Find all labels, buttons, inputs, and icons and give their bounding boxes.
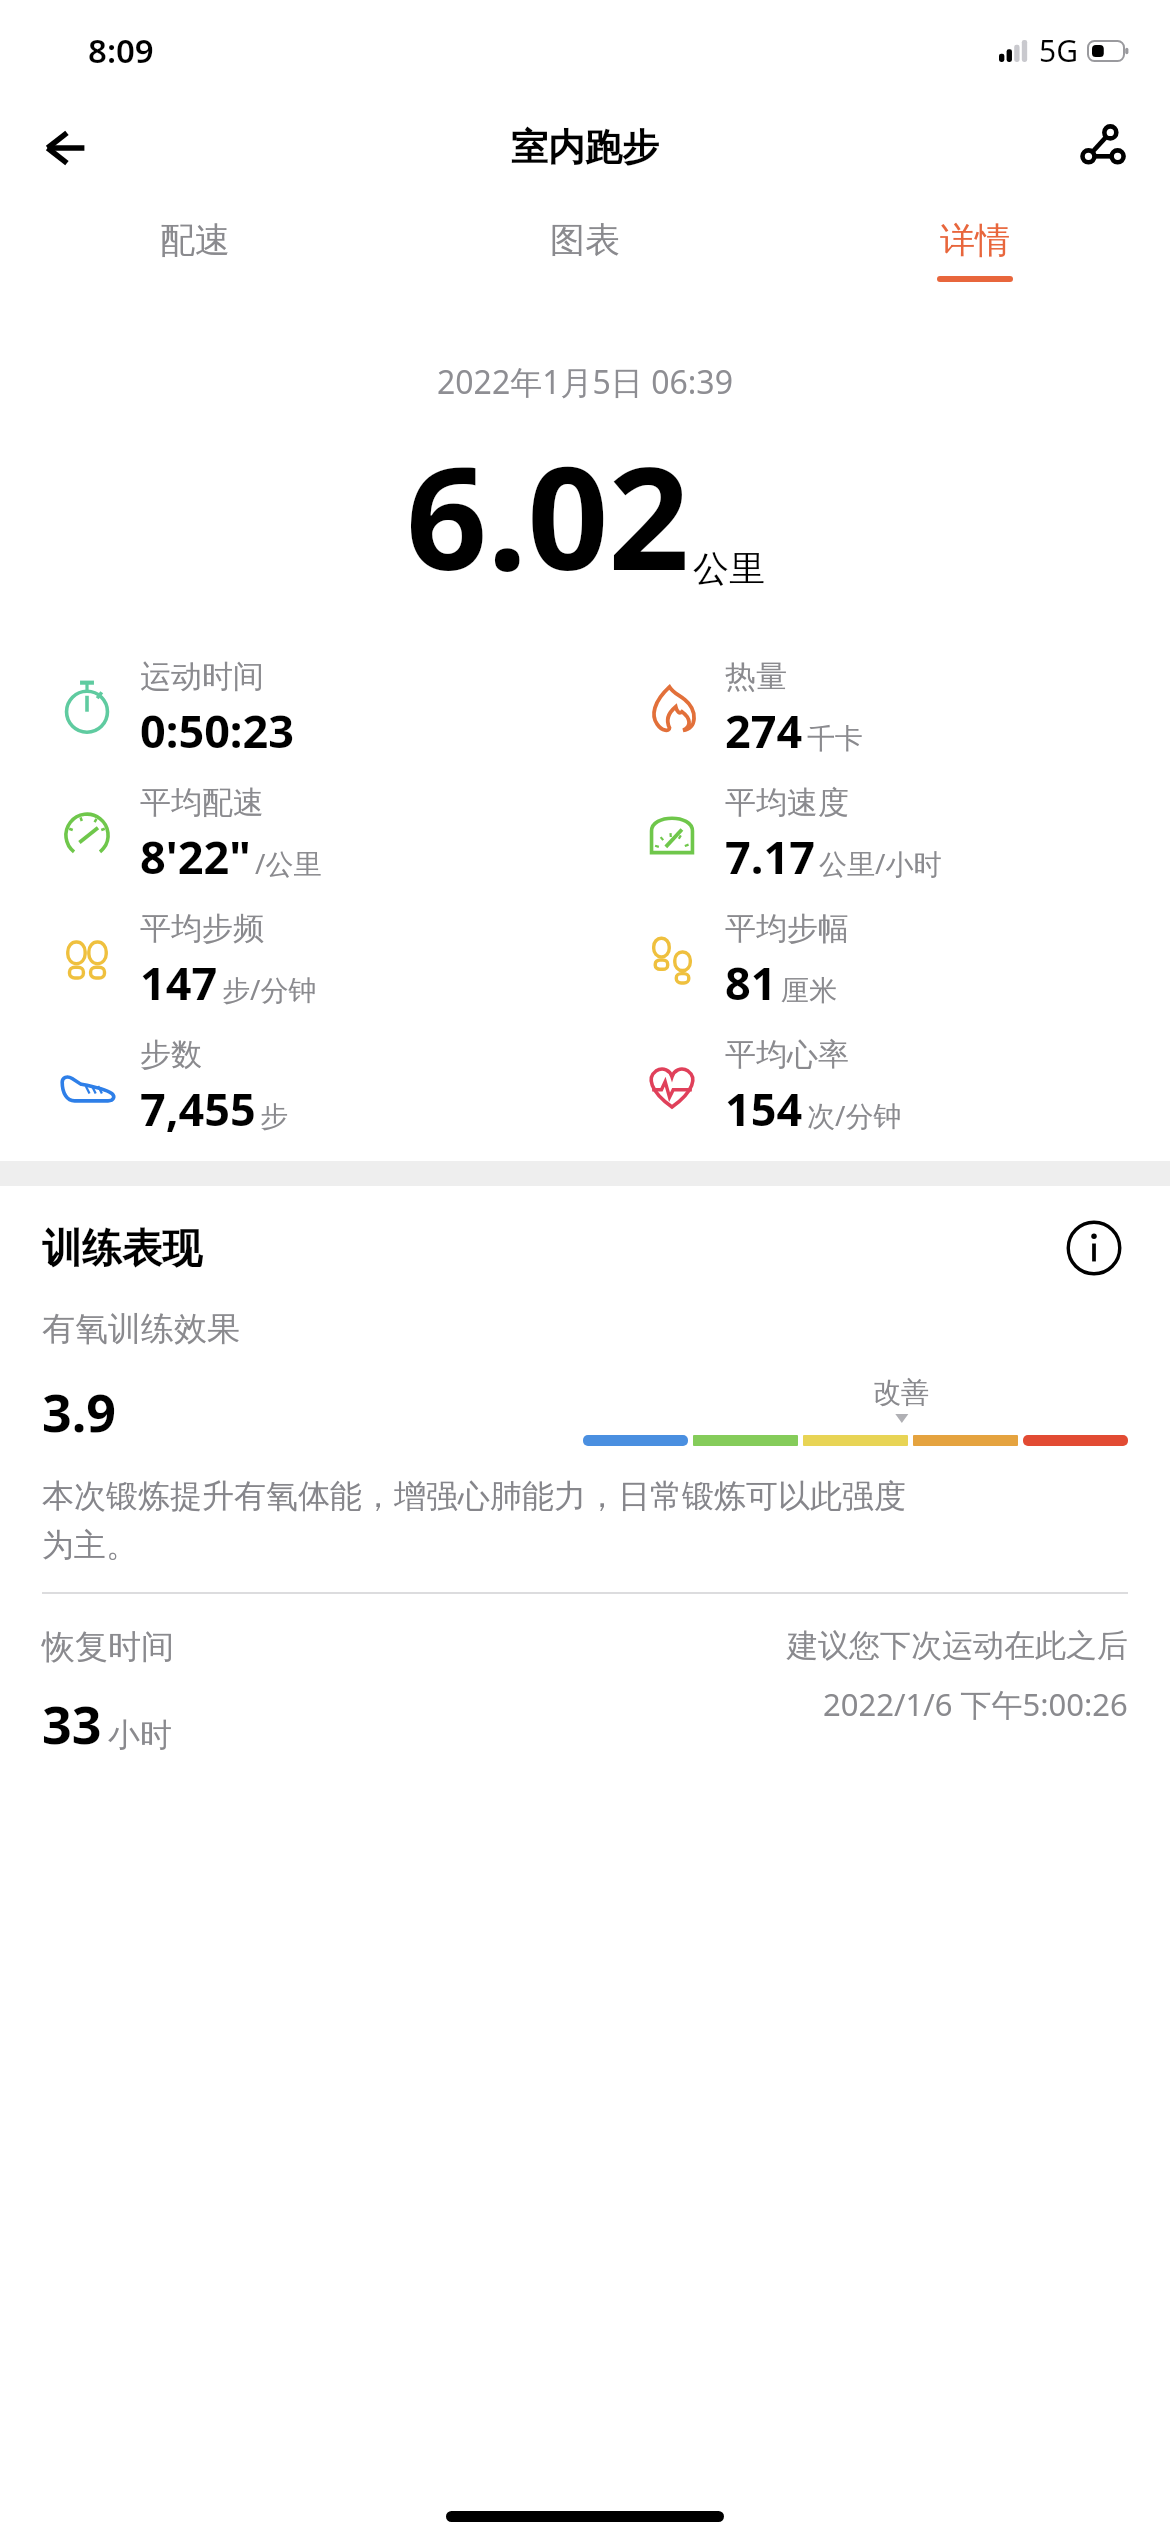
- staticText: 33: [42, 1688, 102, 1759]
- staticText: 公里: [693, 546, 765, 591]
- staticText: 平均心率: [725, 1035, 849, 1074]
- staticText: 7.17: [725, 826, 815, 885]
- staticText: 步: [260, 1099, 288, 1134]
- staticText: 改善: [873, 1375, 929, 1410]
- staticText: 小时: [108, 1715, 172, 1755]
- button[interactable]: 配速: [0, 200, 390, 276]
- staticText: 81: [725, 952, 777, 1011]
- staticText: 千卡: [807, 721, 863, 756]
- staticText: 147: [140, 952, 218, 1011]
- staticText: 次/分钟: [807, 1096, 902, 1134]
- staticText: 2022/1/6 下午5:00:26: [823, 1683, 1128, 1725]
- staticText: 建议您下次运动在此之后: [787, 1626, 1128, 1665]
- staticText: 室内跑步: [511, 124, 659, 171]
- button[interactable]: Share: [1060, 106, 1144, 190]
- staticText: 步/分钟: [222, 970, 317, 1008]
- button[interactable]: 平均步频: [0, 909, 585, 1011]
- staticText: 运动时间: [140, 657, 264, 696]
- staticText: 恢复时间: [42, 1626, 174, 1668]
- staticText: 公里/小时: [819, 844, 942, 882]
- staticText: 0:50:23: [140, 700, 294, 759]
- staticText: 3.9: [42, 1376, 117, 1447]
- staticText: 步数: [140, 1035, 202, 1074]
- staticText: 8:09: [88, 28, 154, 73]
- staticText: 厘米: [781, 973, 837, 1008]
- staticText: 配速: [160, 218, 230, 262]
- staticText: 详情: [940, 218, 1010, 262]
- staticText: 5G: [1039, 30, 1078, 71]
- button[interactable]: 步数: [0, 1035, 585, 1137]
- button[interactable]: 平均速度: [585, 783, 1170, 885]
- staticText: 平均速度: [725, 783, 849, 822]
- staticText: 274: [725, 700, 803, 759]
- staticText: 本次锻炼提升有氧体能，增强心肺能力，日常锻炼可以此强度 为主。: [42, 1476, 906, 1566]
- staticText: 训练表现: [42, 1223, 202, 1273]
- button[interactable]: 运动时间: [0, 657, 585, 759]
- staticText: 平均配速: [140, 783, 264, 822]
- staticText: 平均步频: [140, 909, 264, 948]
- staticText: 2022年1月5日 06:39: [437, 360, 733, 404]
- staticText: 8'22": [140, 826, 251, 885]
- staticText: 有氧训练效果: [42, 1308, 240, 1350]
- staticText: 154: [725, 1078, 803, 1137]
- button[interactable]: 图表: [390, 200, 780, 276]
- button[interactable]: 平均心率: [585, 1035, 1170, 1137]
- button[interactable]: Back: [24, 106, 108, 190]
- button[interactable]: Info: [1060, 1214, 1128, 1282]
- staticText: 6.02: [406, 418, 690, 611]
- staticText: 热量: [725, 657, 787, 696]
- button[interactable]: 平均步幅: [585, 909, 1170, 1011]
- staticText: 图表: [550, 218, 620, 262]
- staticText: /公里: [255, 844, 322, 882]
- staticText: 7,455: [140, 1078, 256, 1137]
- button[interactable]: 热量: [585, 657, 1170, 759]
- button[interactable]: 详情: [780, 200, 1170, 282]
- button[interactable]: 平均配速: [0, 783, 585, 885]
- staticText: 平均步幅: [725, 909, 849, 948]
